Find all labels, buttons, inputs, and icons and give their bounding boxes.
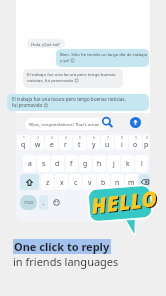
button[interactable]: Emoji bbox=[50, 195, 62, 210]
staticText: Bien. Sólo he tenido un largo día de tra… bbox=[60, 51, 148, 63]
staticText: u bbox=[105, 140, 110, 149]
staticText: One click to reply bbox=[14, 239, 110, 254]
button[interactable]: b bbox=[97, 174, 110, 190]
staticText: Hola ¿Qué tal? 😊 bbox=[31, 41, 65, 48]
button[interactable]: k bbox=[121, 155, 134, 172]
staticText: v bbox=[88, 178, 92, 187]
staticText: h bbox=[97, 159, 102, 168]
staticText: s bbox=[42, 159, 46, 168]
button[interactable]: 0 bbox=[143, 135, 150, 150]
staticText: 2 bbox=[37, 136, 39, 140]
staticText: b bbox=[101, 178, 106, 187]
staticText: n bbox=[115, 178, 120, 187]
button[interactable]: 4 bbox=[59, 135, 72, 150]
button[interactable]: Backspace bbox=[139, 174, 150, 190]
staticText: i bbox=[121, 140, 123, 149]
button[interactable]: Translate bbox=[100, 115, 113, 128]
button[interactable]: Hola ¿Qué tal? 😊 bbox=[27, 39, 65, 48]
staticText: 3 bbox=[51, 136, 53, 140]
button[interactable]: El trabajo fue una locura pero tengo bue… bbox=[7, 94, 149, 111]
button[interactable]: , bbox=[39, 195, 48, 210]
button[interactable]: j bbox=[107, 155, 120, 172]
staticText: 9 bbox=[135, 136, 137, 140]
button[interactable]: m bbox=[125, 174, 138, 190]
button[interactable]: 2 bbox=[31, 135, 44, 150]
staticText: a bbox=[28, 159, 32, 168]
staticText: t bbox=[78, 140, 81, 149]
staticText: HELLO bbox=[89, 184, 159, 221]
button[interactable]: 5 bbox=[73, 135, 86, 150]
button[interactable]: c bbox=[69, 174, 82, 190]
button[interactable]: Wow, congratulations! That's amaz bbox=[25, 118, 111, 130]
staticText: 1 bbox=[23, 136, 25, 140]
button[interactable]: a bbox=[23, 155, 36, 172]
staticText: 0 bbox=[146, 136, 148, 140]
button[interactable]: 6 bbox=[87, 135, 100, 150]
staticText: e bbox=[50, 140, 54, 149]
staticText: 6 bbox=[93, 136, 95, 140]
button[interactable]: 8 bbox=[115, 135, 128, 150]
staticText: ?123 bbox=[24, 200, 34, 206]
staticText: z bbox=[46, 178, 50, 187]
button[interactable]: h bbox=[93, 155, 106, 172]
staticText: x bbox=[60, 178, 64, 187]
button[interactable]: n bbox=[111, 174, 124, 190]
button[interactable]: 3 bbox=[45, 135, 58, 150]
staticText: f bbox=[70, 159, 73, 168]
button[interactable]: s bbox=[37, 155, 50, 172]
staticText: in friends languages bbox=[13, 254, 119, 269]
staticText: y bbox=[92, 140, 96, 149]
staticText: El trabajo fue una locura pero tengo bue… bbox=[12, 96, 126, 109]
button[interactable]: f bbox=[65, 155, 78, 172]
staticText: j bbox=[113, 159, 115, 168]
button[interactable]: d bbox=[51, 155, 64, 172]
staticText: m bbox=[128, 178, 135, 187]
button[interactable]: l bbox=[135, 155, 148, 172]
button[interactable]: El trabajo fue una locura pero tengo bue… bbox=[23, 69, 123, 88]
staticText: g bbox=[83, 159, 88, 168]
button[interactable]: v bbox=[83, 174, 96, 190]
staticText: k bbox=[126, 159, 130, 168]
button[interactable]: Bien. Sólo he tenido un largo día de tra… bbox=[56, 49, 149, 67]
staticText: l bbox=[141, 159, 143, 168]
button[interactable]: z bbox=[41, 174, 54, 190]
staticText: El trabajo fue una locura pero tengo bue… bbox=[27, 71, 116, 83]
button[interactable]: 9 bbox=[129, 135, 142, 150]
button[interactable]: ?123 bbox=[20, 195, 37, 210]
staticText: r bbox=[64, 140, 67, 149]
button[interactable]: Send bbox=[130, 117, 141, 128]
button[interactable]: 1 bbox=[17, 135, 30, 150]
button[interactable]: 7 bbox=[101, 135, 114, 150]
staticText: , bbox=[43, 199, 45, 207]
staticText: c bbox=[74, 178, 78, 187]
staticText: w bbox=[35, 140, 41, 149]
staticText: Wow, congratulations! That's amaz bbox=[29, 121, 99, 127]
button[interactable]: x bbox=[55, 174, 68, 190]
staticText: 7 bbox=[107, 136, 109, 140]
staticText: q bbox=[21, 140, 26, 149]
staticText: 4 bbox=[65, 136, 67, 140]
button[interactable]: Shift bbox=[20, 174, 39, 190]
staticText: 5 bbox=[79, 136, 81, 140]
staticText: p bbox=[144, 140, 149, 149]
staticText: 8 bbox=[121, 136, 123, 140]
staticText: HELLO bbox=[91, 185, 161, 222]
staticText: o bbox=[133, 140, 138, 149]
staticText: d bbox=[55, 159, 60, 168]
button[interactable]: g bbox=[79, 155, 92, 172]
